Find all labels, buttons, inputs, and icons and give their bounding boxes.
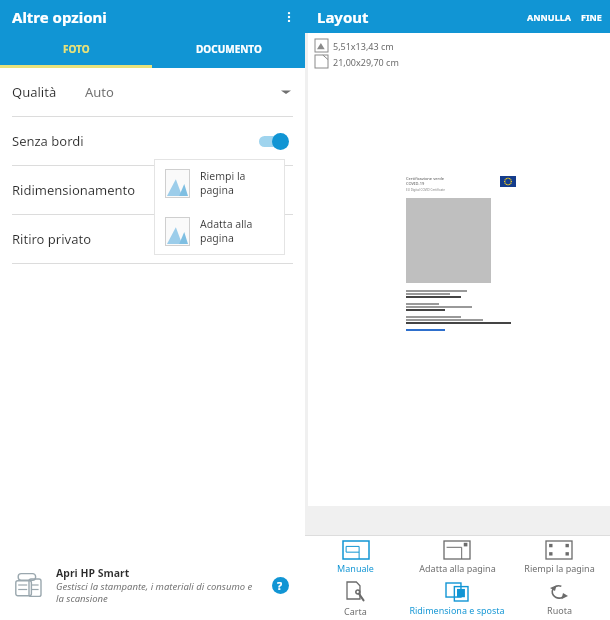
staticText: Qualità bbox=[12, 83, 57, 101]
staticText: Gestisci la stampante, i materiali di co… bbox=[56, 580, 253, 605]
staticText: Ruota bbox=[547, 604, 572, 616]
button[interactable]: Ritiro privato bbox=[0, 215, 305, 263]
staticText: DOCUMENTO bbox=[196, 42, 262, 56]
button[interactable]: Manuale bbox=[305, 536, 406, 578]
button[interactable]: More options bbox=[273, 1, 305, 33]
button[interactable]: Adatta alla pagina bbox=[406, 536, 508, 578]
staticText: ? bbox=[277, 578, 283, 593]
button[interactable]: Adatta alla pagina bbox=[154, 207, 285, 255]
button[interactable]: Carta bbox=[305, 578, 406, 620]
button[interactable]: DOCUMENTO bbox=[152, 33, 305, 65]
staticText: Certificazione verde COVID-19 bbox=[406, 176, 444, 186]
staticText: Adatta alla pagina bbox=[200, 217, 274, 245]
staticText: Altre opzioni bbox=[12, 7, 107, 27]
button[interactable]: Riempi la pagina bbox=[154, 159, 285, 207]
button[interactable]: Ridimensiona e sposta bbox=[406, 578, 508, 620]
staticText: 5,51x13,43 cm bbox=[333, 40, 394, 52]
staticText: Apri HP Smart bbox=[56, 566, 130, 580]
staticText: Ritiro privato bbox=[12, 230, 92, 248]
button[interactable]: Qualità bbox=[0, 68, 305, 116]
staticText: 21,00x29,70 cm bbox=[333, 56, 399, 68]
staticText: FINE bbox=[581, 11, 602, 23]
staticText: Auto bbox=[85, 83, 114, 101]
staticText: Senza bordi bbox=[12, 132, 84, 150]
button[interactable]: Ruota bbox=[508, 578, 610, 620]
staticText: Ridimensionamento bbox=[12, 181, 136, 199]
staticText: Ridimensiona e sposta bbox=[409, 604, 505, 616]
button[interactable]: FINE bbox=[577, 5, 610, 29]
staticText: Manuale bbox=[337, 562, 374, 574]
staticText: FOTO bbox=[63, 42, 90, 56]
staticText: Layout bbox=[317, 7, 369, 27]
button[interactable]: Riempi la pagina bbox=[508, 536, 610, 578]
button[interactable]: FOTO bbox=[0, 33, 152, 65]
staticText: Adatta alla pagina bbox=[419, 562, 496, 574]
button[interactable]: Apri HP Smart bbox=[0, 556, 305, 614]
button[interactable]: Senza bordi bbox=[0, 117, 305, 165]
staticText: ANNULLA bbox=[527, 11, 571, 23]
button[interactable]: ANNULLA bbox=[521, 5, 577, 29]
staticText: Riempi la pagina bbox=[200, 169, 274, 197]
staticText: EU Digital COVID Certificate bbox=[406, 188, 445, 192]
staticText: Carta bbox=[344, 605, 367, 617]
button[interactable]: Ridimensionamento bbox=[0, 166, 305, 214]
button[interactable]: Help bbox=[269, 574, 291, 596]
staticText: Riempi la pagina bbox=[524, 562, 595, 574]
